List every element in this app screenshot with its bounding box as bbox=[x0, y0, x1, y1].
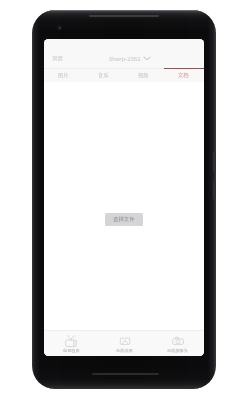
button[interactable]: 无线传屏 bbox=[98, 331, 151, 356]
staticText: 无线传屏 bbox=[116, 348, 133, 353]
staticText: 无线摄像头 bbox=[167, 348, 188, 353]
staticText: 电视投屏 bbox=[63, 348, 80, 353]
button[interactable]: 图片 bbox=[44, 69, 83, 82]
button[interactable]: 音乐 bbox=[83, 69, 123, 82]
button[interactable]: 选择文件 bbox=[105, 213, 143, 226]
button[interactable]: 视频 bbox=[123, 69, 163, 82]
button[interactable]: Sharp-2362 bbox=[105, 51, 155, 67]
button[interactable]: 电视投屏 bbox=[44, 331, 98, 356]
staticText: Sharp-2362 bbox=[109, 55, 141, 63]
button[interactable]: 文档 bbox=[163, 69, 203, 82]
staticText: 图片 bbox=[58, 72, 69, 79]
button[interactable]: 设置 bbox=[44, 50, 71, 67]
staticText: 设置 bbox=[52, 55, 63, 62]
staticText: 视频 bbox=[138, 72, 149, 79]
staticText: 选择文件 bbox=[113, 216, 135, 223]
staticText: 音乐 bbox=[98, 72, 109, 79]
staticText: 文档 bbox=[178, 72, 189, 79]
button[interactable]: 无线摄像头 bbox=[151, 331, 204, 356]
